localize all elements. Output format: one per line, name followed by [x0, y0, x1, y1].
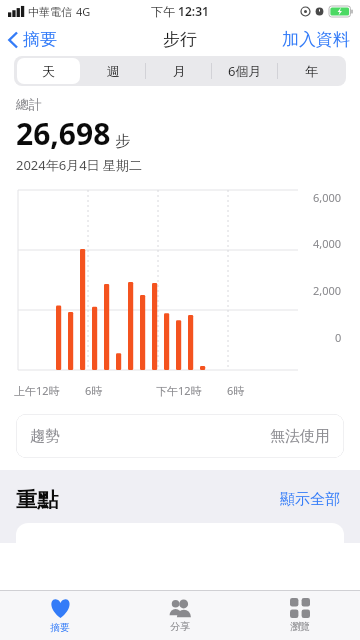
staticText: 4G [76, 4, 91, 19]
staticText: 瀏覽 [290, 620, 310, 633]
button[interactable]: 月 [147, 58, 211, 84]
staticText: 2,000 [313, 283, 342, 298]
button[interactable]: 摘要 [0, 591, 120, 640]
staticText: 6,000 [313, 190, 342, 205]
button[interactable]: 年 [279, 58, 343, 84]
staticText: 摘要 [50, 621, 70, 634]
button[interactable]: 趨勢 [16, 414, 344, 458]
button[interactable]: 摘要 [0, 25, 65, 54]
staticText: 0 [335, 330, 342, 345]
staticText: 分享 [170, 620, 190, 633]
button[interactable]: 分享 [120, 591, 240, 640]
staticText: 26,698 [16, 113, 111, 154]
staticText: 無法使用 [270, 427, 330, 446]
staticText: 週 [107, 63, 120, 79]
staticText: 步行 [163, 29, 197, 50]
staticText: 6個月 [228, 62, 262, 80]
staticText: 下午12時 [156, 383, 202, 398]
staticText: 中華電信 [28, 5, 72, 19]
staticText: 顯示全部 [280, 490, 340, 509]
staticText: 總計 [16, 96, 42, 112]
button[interactable]: 加入資料 [272, 25, 360, 54]
button[interactable]: 6個月 [213, 58, 277, 84]
button[interactable]: 天 [17, 58, 80, 84]
staticText: 加入資料 [282, 29, 350, 50]
button[interactable]: 顯示全部 [276, 486, 344, 513]
staticText: 4,000 [313, 236, 342, 251]
button[interactable]: 瀏覽 [240, 591, 360, 640]
staticText: 天 [42, 63, 55, 79]
staticText: 年 [305, 63, 318, 79]
staticText: 重點 [16, 487, 58, 513]
staticText: 下午 12:31 [151, 3, 209, 19]
staticText: 步 [115, 132, 130, 151]
staticText: 上午12時 [14, 383, 60, 398]
button[interactable]: 週 [82, 58, 145, 84]
staticText: 6時 [227, 383, 245, 398]
staticText: 摘要 [23, 29, 57, 50]
staticText: 月 [173, 63, 186, 79]
staticText: 6時 [85, 383, 103, 398]
staticText: 2024年6月4日 星期二 [16, 156, 142, 174]
staticText: 趨勢 [30, 427, 60, 446]
